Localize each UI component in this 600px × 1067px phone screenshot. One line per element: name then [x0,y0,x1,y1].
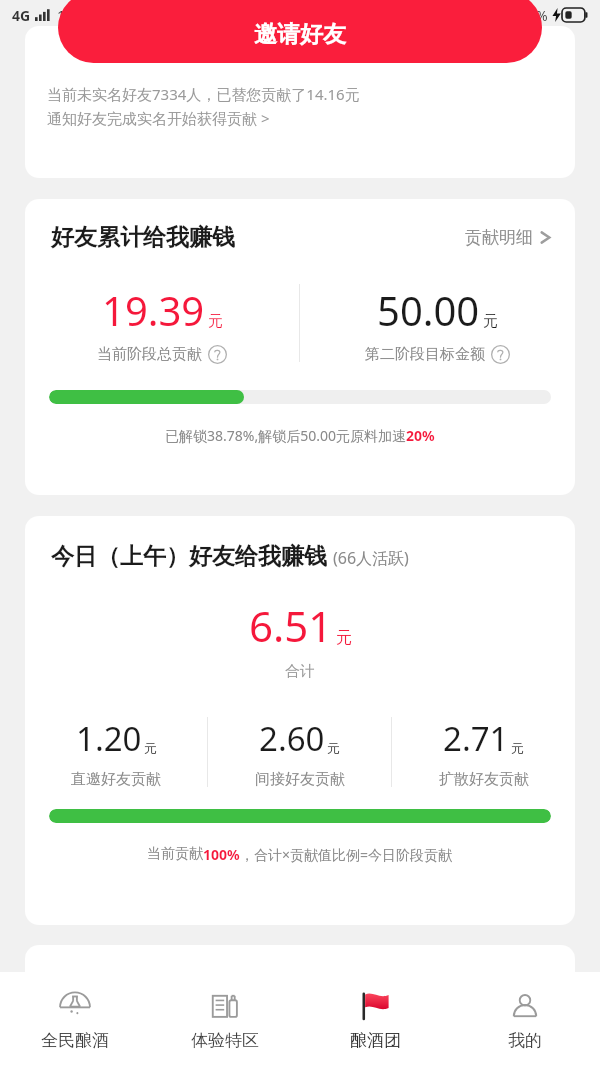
staticText: 当前未实名好友7334人，已替您贡献了14.16元 [47,84,360,104]
staticText: 4G [12,6,31,25]
staticText: ，合计×贡献值比例=今日阶段贡献 [240,845,453,864]
button[interactable]: 邀请好友 [58,0,542,63]
staticText: 元 [483,312,498,331]
staticText: 当前贡献 [147,845,203,863]
staticText: 50.00 [377,283,480,337]
staticText: 贡献明细 [465,227,533,248]
staticText: 邀请好友 [254,20,346,49]
staticText: 通知好友完成实名开始获得贡献 > [47,108,270,128]
button[interactable]: 我的 [450,972,600,1067]
staticText: 1.6K/s [57,6,98,25]
button[interactable]: 贡献明细 [461,223,555,252]
staticText: 全民酿酒 [41,1030,109,1051]
staticText: 10:41 [270,6,306,25]
staticText: (66人活跃) [333,547,409,569]
staticText: 元 [511,740,524,756]
staticText: 当前阶段总贡献 [97,345,202,364]
staticText: 合计 [25,662,575,681]
staticText: 1.20 [76,716,142,761]
button[interactable]: 酿酒团 [300,972,450,1067]
staticText: 元 [144,740,157,756]
staticText: 100% [203,845,240,864]
staticText: 扩散好友贡献 [439,770,529,789]
staticText: 好友累计给我赚钱 [51,223,235,252]
button[interactable]: 体验特区 [150,972,300,1067]
staticText: 元 [327,740,340,756]
staticText: 体验特区 [191,1030,259,1051]
staticText: 元 [208,312,223,331]
staticText: 今日（上午）好友给我赚钱 [51,542,327,571]
staticText: 元 [336,628,352,648]
button[interactable]: 全民酿酒 [0,972,150,1067]
staticText: 2.71 [443,716,509,761]
staticText: 6.51 [249,597,333,654]
staticText: 酿酒团 [350,1030,401,1051]
staticText: 20% [406,426,435,445]
button[interactable]: 通知好友完成实名开始获得贡献 > [47,108,270,128]
staticText: 间接好友贡献 [255,770,345,789]
staticText: 直邀好友贡献 [71,770,161,789]
staticText: 已解锁38.78%,解锁后50.00元原料加速 [165,426,406,445]
staticText: 2.60 [259,716,325,761]
staticText: 我的 [508,1030,542,1051]
staticText: 19.39 [102,283,205,337]
staticText: 第二阶段目标金额 [365,345,485,364]
staticText: 39% [520,6,548,25]
